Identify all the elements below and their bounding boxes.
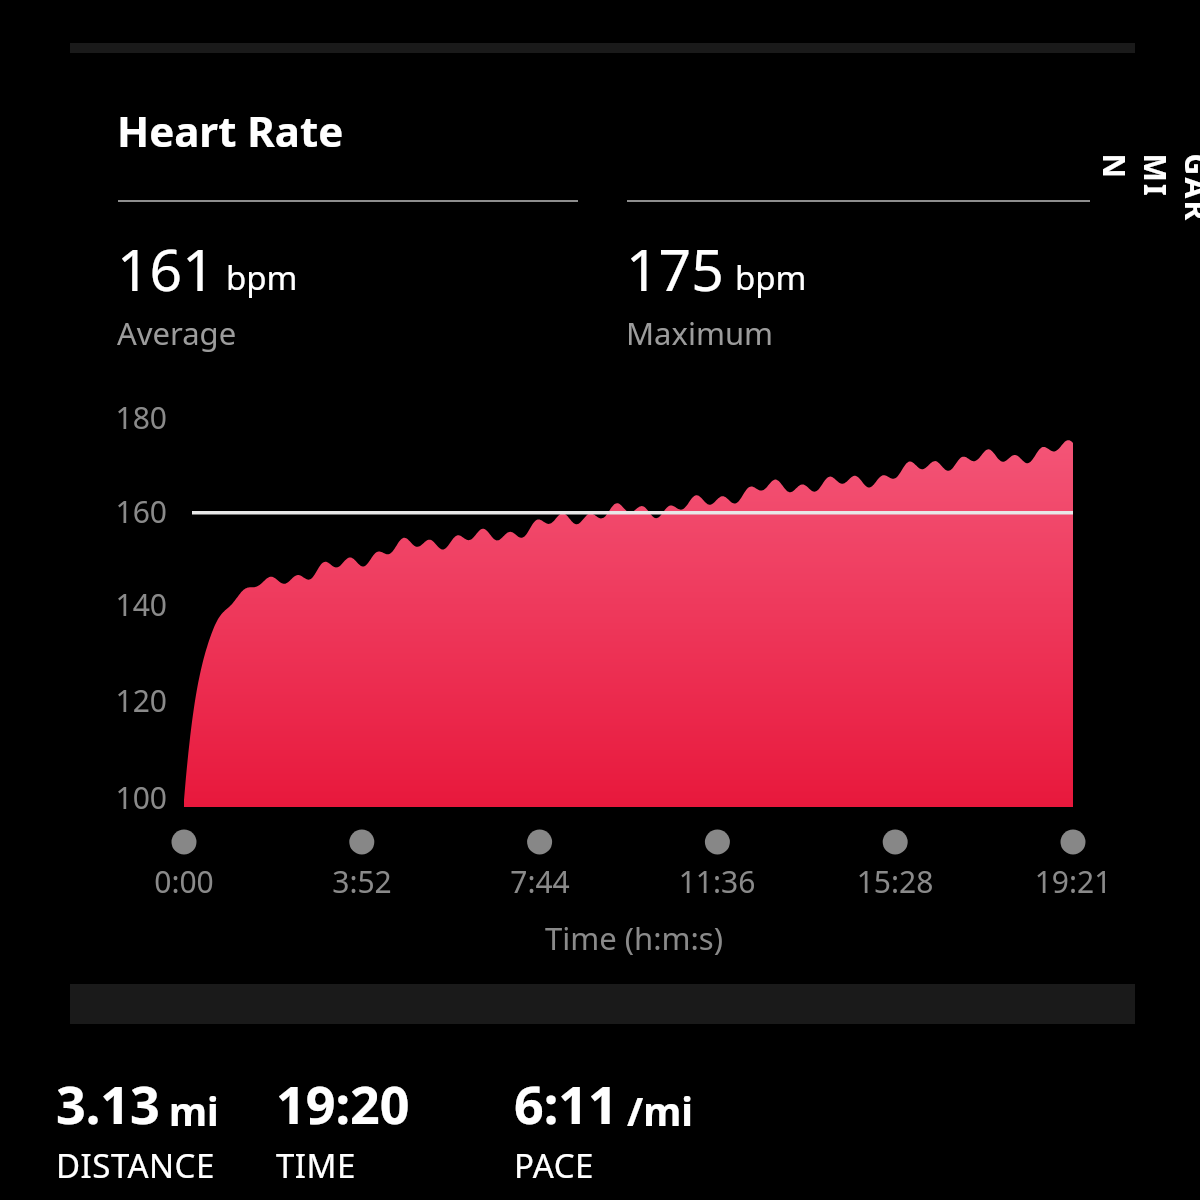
staticText: 161 — [117, 230, 215, 308]
staticText: 0:00 — [114, 861, 254, 902]
staticText: 120 — [85, 680, 167, 721]
staticText: 6:11 — [514, 1068, 618, 1139]
staticText: 180 — [85, 397, 167, 438]
staticText: 11:36 — [647, 861, 787, 902]
staticText: 7:44 — [470, 861, 610, 902]
staticText: 160 — [85, 491, 167, 532]
button[interactable]: 6:11 — [514, 1068, 693, 1184]
staticText: 19:21 — [1003, 861, 1143, 902]
button[interactable]: 3.13 — [56, 1068, 219, 1184]
staticText: Average — [117, 312, 237, 354]
staticText: 175 — [626, 230, 724, 308]
staticText: 3:52 — [292, 861, 432, 902]
staticText: mi — [169, 1084, 219, 1137]
staticText: DISTANCE — [56, 1143, 215, 1188]
button[interactable]: 19:20 — [276, 1068, 410, 1184]
button[interactable]: 161 — [117, 230, 547, 350]
staticText: GARMIN — [1093, 153, 1200, 223]
staticText: bpm — [226, 255, 298, 300]
staticText: PACE — [514, 1143, 594, 1188]
staticText: 19:20 — [276, 1068, 410, 1139]
staticText: 3.13 — [56, 1068, 160, 1139]
staticText: Heart Rate — [117, 102, 344, 159]
staticText: TIME — [276, 1143, 356, 1188]
button[interactable]: Garmin — [1120, 90, 1190, 286]
staticText: 15:28 — [825, 861, 965, 902]
staticText: bpm — [735, 255, 807, 300]
staticText: Time (h:m:s) — [484, 917, 784, 959]
staticText: Maximum — [626, 312, 774, 354]
staticText: 100 — [85, 777, 167, 818]
staticText: 140 — [85, 584, 167, 625]
staticText: /mi — [627, 1084, 693, 1137]
button[interactable]: 175 — [626, 230, 1056, 350]
